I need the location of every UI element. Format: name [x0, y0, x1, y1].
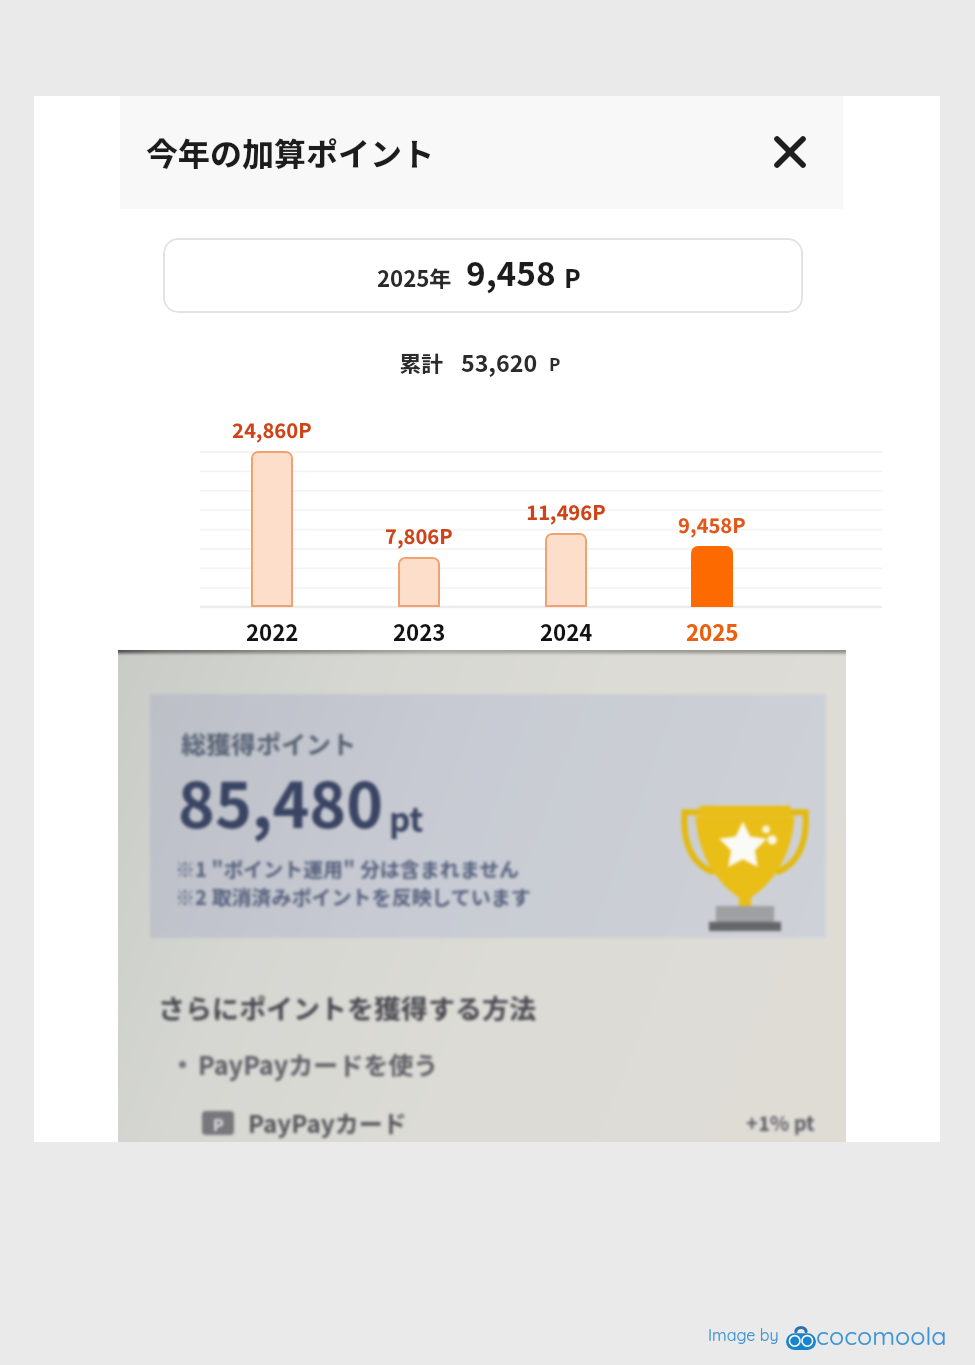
staticText: 2023 — [393, 615, 446, 647]
staticText: pt — [389, 794, 424, 842]
staticText: +1% pt — [746, 1108, 815, 1137]
staticText: 11,496P — [526, 497, 606, 526]
staticText: 2025年 — [377, 261, 452, 293]
staticText: P — [213, 1112, 224, 1135]
staticText: 24,860P — [232, 415, 312, 444]
staticText: 今年の加算ポイント — [146, 129, 435, 175]
staticText: 2022 — [246, 615, 299, 647]
staticText: 7,806P — [385, 521, 453, 550]
staticText: 53,620 — [461, 345, 538, 378]
staticText: 9,458P — [678, 510, 746, 539]
button[interactable]: 2025年 — [163, 238, 803, 313]
staticText: 総獲得ポイント — [181, 725, 357, 761]
staticText: P — [564, 259, 581, 295]
staticText: 85,480 — [178, 756, 384, 846]
staticText: さらにポイントを獲得する方法 — [158, 988, 536, 1027]
staticText: 2024 — [540, 615, 593, 647]
staticText: ※1 "ポイント運用" 分は含まれません — [175, 854, 520, 883]
staticText: Image by — [708, 1325, 779, 1345]
staticText: cocomoola — [816, 1320, 947, 1351]
staticText: PayPayカード — [248, 1105, 407, 1140]
button[interactable]: Close — [762, 124, 818, 180]
staticText: PayPayカードを使う — [198, 1046, 439, 1082]
staticText: 2025 — [686, 615, 739, 647]
staticText: ※2 取消済みポイントを反映しています — [175, 882, 531, 911]
staticText: 累計 — [399, 346, 444, 378]
staticText: P — [549, 351, 561, 376]
staticText: 9,458 — [466, 248, 556, 296]
